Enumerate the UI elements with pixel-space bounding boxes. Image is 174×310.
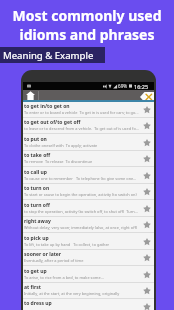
staticText: to get up	[24, 268, 47, 275]
staticText: Most commonly used	[0, 6, 174, 25]
staticText: To lift, to take up by hand To collect, …	[24, 242, 110, 247]
staticText: to turn on	[24, 185, 50, 192]
staticText: To start or cause to begin the operation…	[24, 192, 137, 197]
button[interactable]: at first	[23, 283, 154, 299]
staticText: to dress up	[24, 300, 52, 307]
staticText: 16:25	[134, 83, 149, 90]
staticText: Without delay; very soon; immediately (a…	[24, 225, 138, 230]
button[interactable]: right away	[23, 217, 154, 233]
staticText: To arise, to rise from a bed, to make so…	[24, 275, 104, 280]
button[interactable]: to pick up	[23, 234, 154, 250]
button[interactable]: sooner or later	[23, 250, 154, 266]
staticText: to pick up	[24, 235, 49, 242]
button[interactable]: to get up	[23, 267, 154, 283]
button[interactable]: to turn off	[23, 201, 154, 217]
staticText: to get in/to get on	[24, 103, 70, 110]
button[interactable]: Meaning & Example	[0, 47, 105, 63]
staticText: to call up	[24, 169, 47, 176]
staticText: 69%	[118, 83, 128, 89]
staticText: sooner or later	[24, 251, 62, 258]
button[interactable]: to put on	[23, 135, 154, 151]
staticText: to leave or to descend from a vehicle. T…	[24, 126, 139, 131]
staticText: at first	[24, 284, 41, 291]
button[interactable]: to take off	[23, 151, 154, 167]
staticText: idioms and phrases	[0, 25, 174, 44]
staticText: to turn off	[24, 202, 50, 209]
staticText: to get out of/to get off	[24, 119, 81, 126]
staticText: Meaning & Example	[3, 49, 94, 62]
staticText: To cause one to remember To telephone (t…	[24, 176, 137, 181]
staticText: to take off	[24, 152, 51, 159]
staticText: right away	[24, 218, 51, 225]
button[interactable]: to get out of/to get off	[23, 118, 154, 134]
staticText: To clothe oneself with To apply; activat…	[24, 143, 98, 148]
button[interactable]: Home	[25, 90, 35, 100]
button[interactable]: to dress up	[23, 299, 154, 310]
staticText: to put on	[24, 136, 47, 143]
staticText: Eventually, after a period of time	[24, 258, 84, 263]
staticText: To remove To release To discontinue	[24, 159, 93, 164]
staticText: Initially, at the start, at the very beg…	[24, 291, 120, 296]
button[interactable]: Close	[140, 92, 154, 102]
button[interactable]: to turn on	[23, 184, 154, 200]
staticText: to stop the operation, activity (to swit…	[24, 209, 138, 214]
button[interactable]: to get in/to get on	[23, 102, 154, 118]
button[interactable]: to call up	[23, 168, 154, 184]
staticText: To enter or to board a vehicle To get in…	[24, 110, 139, 115]
